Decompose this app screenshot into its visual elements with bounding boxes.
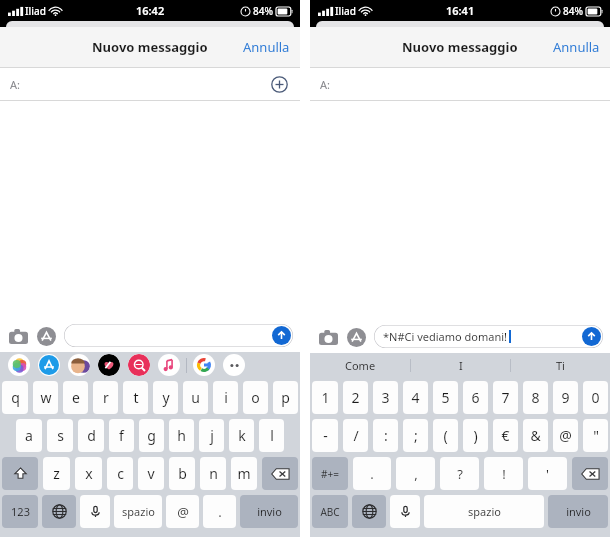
button[interactable]: (	[433, 419, 458, 452]
button[interactable]: &	[523, 419, 548, 452]
button[interactable]: Cancella	[262, 457, 298, 490]
button[interactable]: '	[528, 457, 567, 490]
button[interactable]: 123	[2, 495, 38, 528]
button[interactable]: d	[78, 419, 104, 452]
button[interactable]: App iMessage	[68, 354, 90, 376]
button[interactable]: @	[553, 419, 578, 452]
button[interactable]: q	[2, 381, 28, 414]
button[interactable]: y	[153, 381, 178, 414]
button[interactable]: Cambia lingua	[42, 495, 76, 528]
button[interactable]: e	[63, 381, 88, 414]
button[interactable]: App iMessage	[193, 354, 215, 376]
button[interactable]: @	[166, 495, 199, 528]
staticText: x	[85, 464, 93, 483]
button[interactable]: g	[139, 419, 164, 452]
button[interactable]: invio	[240, 495, 298, 528]
button[interactable]: .	[353, 457, 391, 490]
button[interactable]: Aggiungi contatto	[268, 73, 290, 95]
button[interactable]: x	[75, 457, 102, 490]
button[interactable]: #+=	[312, 457, 348, 490]
staticText: )	[473, 426, 478, 445]
button[interactable]: :	[373, 419, 398, 452]
button[interactable]: App iMessage	[128, 354, 150, 376]
button[interactable]: Ti	[511, 353, 610, 378]
button[interactable]: )	[463, 419, 488, 452]
button[interactable]: l	[259, 419, 284, 452]
button[interactable]: Invia	[64, 324, 293, 347]
button[interactable]: spazio	[114, 495, 162, 528]
button[interactable]: App iMessage	[223, 354, 245, 376]
button[interactable]: f	[109, 419, 134, 452]
button[interactable]: 5	[433, 381, 458, 414]
button[interactable]: spazio	[424, 495, 544, 528]
button[interactable]: o	[243, 381, 268, 414]
button[interactable]: /	[343, 419, 368, 452]
button[interactable]: Dettatura	[80, 495, 110, 528]
button[interactable]: k	[229, 419, 254, 452]
button[interactable]: 7	[493, 381, 518, 414]
button[interactable]: *N#Ci vediamo domani!	[374, 325, 603, 348]
button[interactable]: App Store	[35, 325, 57, 347]
button[interactable]: invio	[548, 495, 608, 528]
button[interactable]: a	[16, 419, 42, 452]
button[interactable]: ?	[440, 457, 479, 490]
button[interactable]: Fotocamera	[317, 326, 339, 348]
button[interactable]: App iMessage	[38, 354, 60, 376]
button[interactable]: App Store	[345, 326, 367, 348]
button[interactable]: !	[484, 457, 523, 490]
button[interactable]: v	[138, 457, 164, 490]
button[interactable]: App iMessage	[8, 354, 30, 376]
staticText: p	[281, 388, 290, 407]
button[interactable]: w	[33, 381, 58, 414]
button[interactable]: u	[183, 381, 208, 414]
button[interactable]: n	[200, 457, 226, 490]
button[interactable]: ABC	[312, 495, 348, 528]
button[interactable]: -	[312, 419, 338, 452]
button[interactable]: 9	[553, 381, 578, 414]
button[interactable]: Maiuscole	[2, 457, 38, 490]
staticText: &	[530, 426, 541, 445]
button[interactable]: 6	[463, 381, 488, 414]
button[interactable]: Invia	[272, 326, 291, 345]
button[interactable]: Cancella	[572, 457, 608, 490]
button[interactable]: b	[169, 457, 195, 490]
button[interactable]: t	[123, 381, 148, 414]
button[interactable]: Come	[310, 353, 410, 378]
button[interactable]: Invia	[582, 327, 601, 346]
staticText: e	[72, 388, 80, 407]
button[interactable]: i	[213, 381, 238, 414]
button[interactable]: p	[273, 381, 298, 414]
button[interactable]: 2	[343, 381, 368, 414]
button[interactable]: Cambia lingua	[352, 495, 386, 528]
staticText: 4	[411, 388, 420, 407]
staticText: A:	[320, 77, 330, 92]
button[interactable]: .	[203, 495, 236, 528]
button[interactable]: Dettatura	[390, 495, 420, 528]
staticText: w	[40, 388, 52, 407]
button[interactable]: j	[199, 419, 224, 452]
button[interactable]: App iMessage	[98, 354, 120, 376]
button[interactable]: App iMessage	[158, 354, 180, 376]
button[interactable]: c	[107, 457, 133, 490]
button[interactable]: 4	[403, 381, 428, 414]
button[interactable]: I	[411, 353, 510, 378]
button[interactable]: ,	[396, 457, 435, 490]
button[interactable]: 1	[312, 381, 338, 414]
button[interactable]: r	[93, 381, 118, 414]
button[interactable]: s	[47, 419, 73, 452]
button[interactable]: 0	[583, 381, 608, 414]
button[interactable]: €	[493, 419, 518, 452]
staticText: 16:41	[446, 3, 475, 18]
button[interactable]: 8	[523, 381, 548, 414]
button[interactable]: h	[169, 419, 194, 452]
button[interactable]: m	[231, 457, 257, 490]
button[interactable]: ;	[403, 419, 428, 452]
button[interactable]: Fotocamera	[7, 325, 29, 347]
button[interactable]: Annulla	[233, 32, 300, 62]
staticText: 6	[471, 388, 480, 407]
button[interactable]: z	[43, 457, 70, 490]
button[interactable]: 3	[373, 381, 398, 414]
staticText: Annulla	[243, 38, 290, 56]
button[interactable]: Annulla	[543, 32, 610, 62]
button[interactable]: "	[583, 419, 608, 452]
